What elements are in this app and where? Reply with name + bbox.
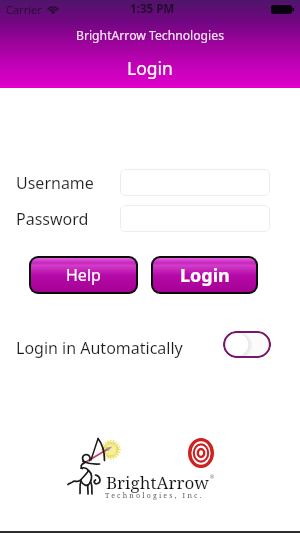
staticText: Username: [16, 172, 94, 194]
staticText: Help: [66, 264, 101, 286]
staticText: Login: [127, 56, 173, 80]
button[interactable]: Help: [31, 258, 136, 292]
staticText: BrightArrow Technologies: [76, 27, 224, 44]
button[interactable]: Text field: [120, 205, 270, 232]
staticText: BrightArrow: [106, 471, 209, 494]
staticText: Login in Automatically: [16, 337, 183, 359]
staticText: 1:35 PM: [130, 1, 175, 17]
button[interactable]: Login: [153, 258, 256, 292]
staticText: ®: [210, 474, 215, 481]
button[interactable]: Login in Automatically: [223, 331, 271, 358]
staticText: Password: [16, 208, 89, 230]
button[interactable]: Text field: [120, 169, 270, 196]
staticText: Technologies, Inc.: [105, 491, 204, 501]
staticText: Login: [180, 263, 230, 288]
staticText: Carrier: [6, 2, 42, 17]
